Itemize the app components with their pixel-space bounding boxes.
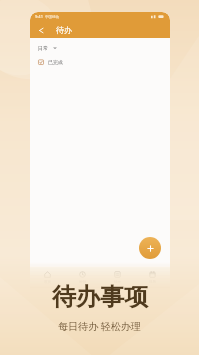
button[interactable]: 日历	[135, 267, 170, 287]
button[interactable]: 首页	[30, 267, 65, 287]
button[interactable]: 返回	[35, 24, 47, 36]
button[interactable]: 待办	[100, 267, 135, 287]
button[interactable]: 日常	[37, 43, 58, 53]
staticText: 中国移动	[45, 15, 59, 19]
staticText: 已完成	[48, 59, 63, 65]
staticText: 日常	[38, 45, 48, 51]
staticText: 待办事项	[52, 282, 148, 312]
staticText: 9:41	[35, 14, 43, 19]
button[interactable]: 已完成	[37, 57, 64, 67]
button[interactable]: 时钟	[65, 267, 100, 287]
button[interactable]: 添加待办	[139, 237, 161, 259]
staticText: 待办	[56, 25, 72, 35]
staticText: 每日待办 轻松办理	[58, 319, 141, 333]
